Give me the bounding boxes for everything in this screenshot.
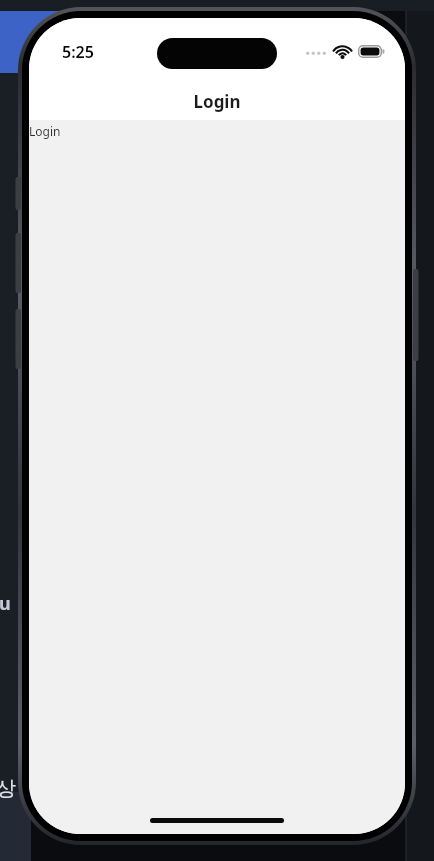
staticText: 상 <box>0 776 16 801</box>
button[interactable]: Login <box>29 123 61 139</box>
staticText: Login <box>29 90 405 113</box>
staticText: 5:25 <box>62 41 94 63</box>
staticText: u <box>0 591 11 616</box>
